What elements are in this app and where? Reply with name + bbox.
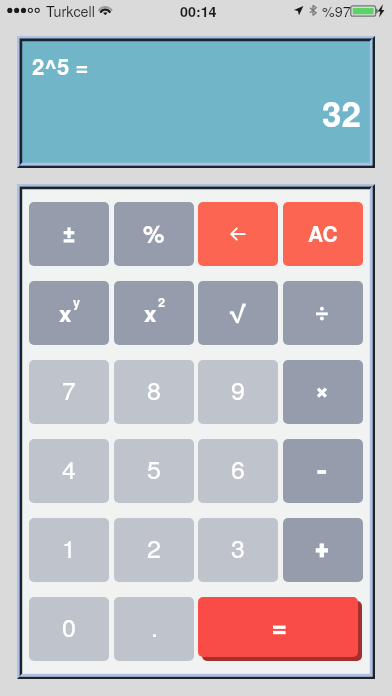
- button[interactable]: %: [114, 202, 194, 266]
- button[interactable]: Subtract: [283, 439, 363, 503]
- button[interactable]: x: [114, 281, 194, 345]
- staticText: 3: [231, 529, 245, 565]
- button[interactable]: Add: [283, 518, 363, 582]
- staticText: 8: [147, 371, 161, 407]
- button[interactable]: Multiply: [283, 360, 363, 424]
- staticText: 1: [62, 529, 76, 565]
- button[interactable]: 8: [114, 360, 194, 424]
- button[interactable]: Square root: [198, 281, 278, 345]
- staticText: x: [59, 297, 72, 329]
- staticText: %97: [322, 1, 351, 21]
- staticText: 9: [231, 371, 245, 407]
- button[interactable]: Equals: [198, 597, 358, 657]
- button[interactable]: 9: [198, 360, 278, 424]
- staticText: AC: [308, 218, 338, 248]
- button[interactable]: 3: [198, 518, 278, 582]
- button[interactable]: 4: [29, 439, 109, 503]
- button[interactable]: .: [114, 597, 194, 661]
- button[interactable]: 1: [29, 518, 109, 582]
- staticText: y: [73, 293, 81, 311]
- staticText: 0: [62, 608, 76, 644]
- staticText: x: [144, 297, 157, 329]
- button[interactable]: 2: [114, 518, 194, 582]
- staticText: 4: [62, 450, 76, 486]
- button[interactable]: AC: [283, 202, 363, 266]
- button[interactable]: 5: [114, 439, 194, 503]
- staticText: 7: [62, 371, 76, 407]
- staticText: 5: [147, 450, 161, 486]
- button[interactable]: Backspace: [198, 202, 278, 266]
- staticText: .: [151, 608, 158, 644]
- staticText: %: [143, 216, 165, 250]
- staticText: 6: [231, 450, 245, 486]
- button[interactable]: 6: [198, 439, 278, 503]
- staticText: 2: [158, 293, 166, 311]
- staticText: 00:14: [180, 1, 217, 21]
- staticText: 2^5 =: [32, 50, 89, 82]
- staticText: Turkcell: [46, 1, 95, 21]
- button[interactable]: 7: [29, 360, 109, 424]
- button[interactable]: 0: [29, 597, 109, 661]
- staticText: 32: [322, 88, 361, 138]
- button[interactable]: x: [29, 281, 109, 345]
- button[interactable]: Divide: [283, 281, 363, 345]
- staticText: 2: [147, 529, 161, 565]
- button[interactable]: Plus minus sign: [29, 202, 109, 266]
